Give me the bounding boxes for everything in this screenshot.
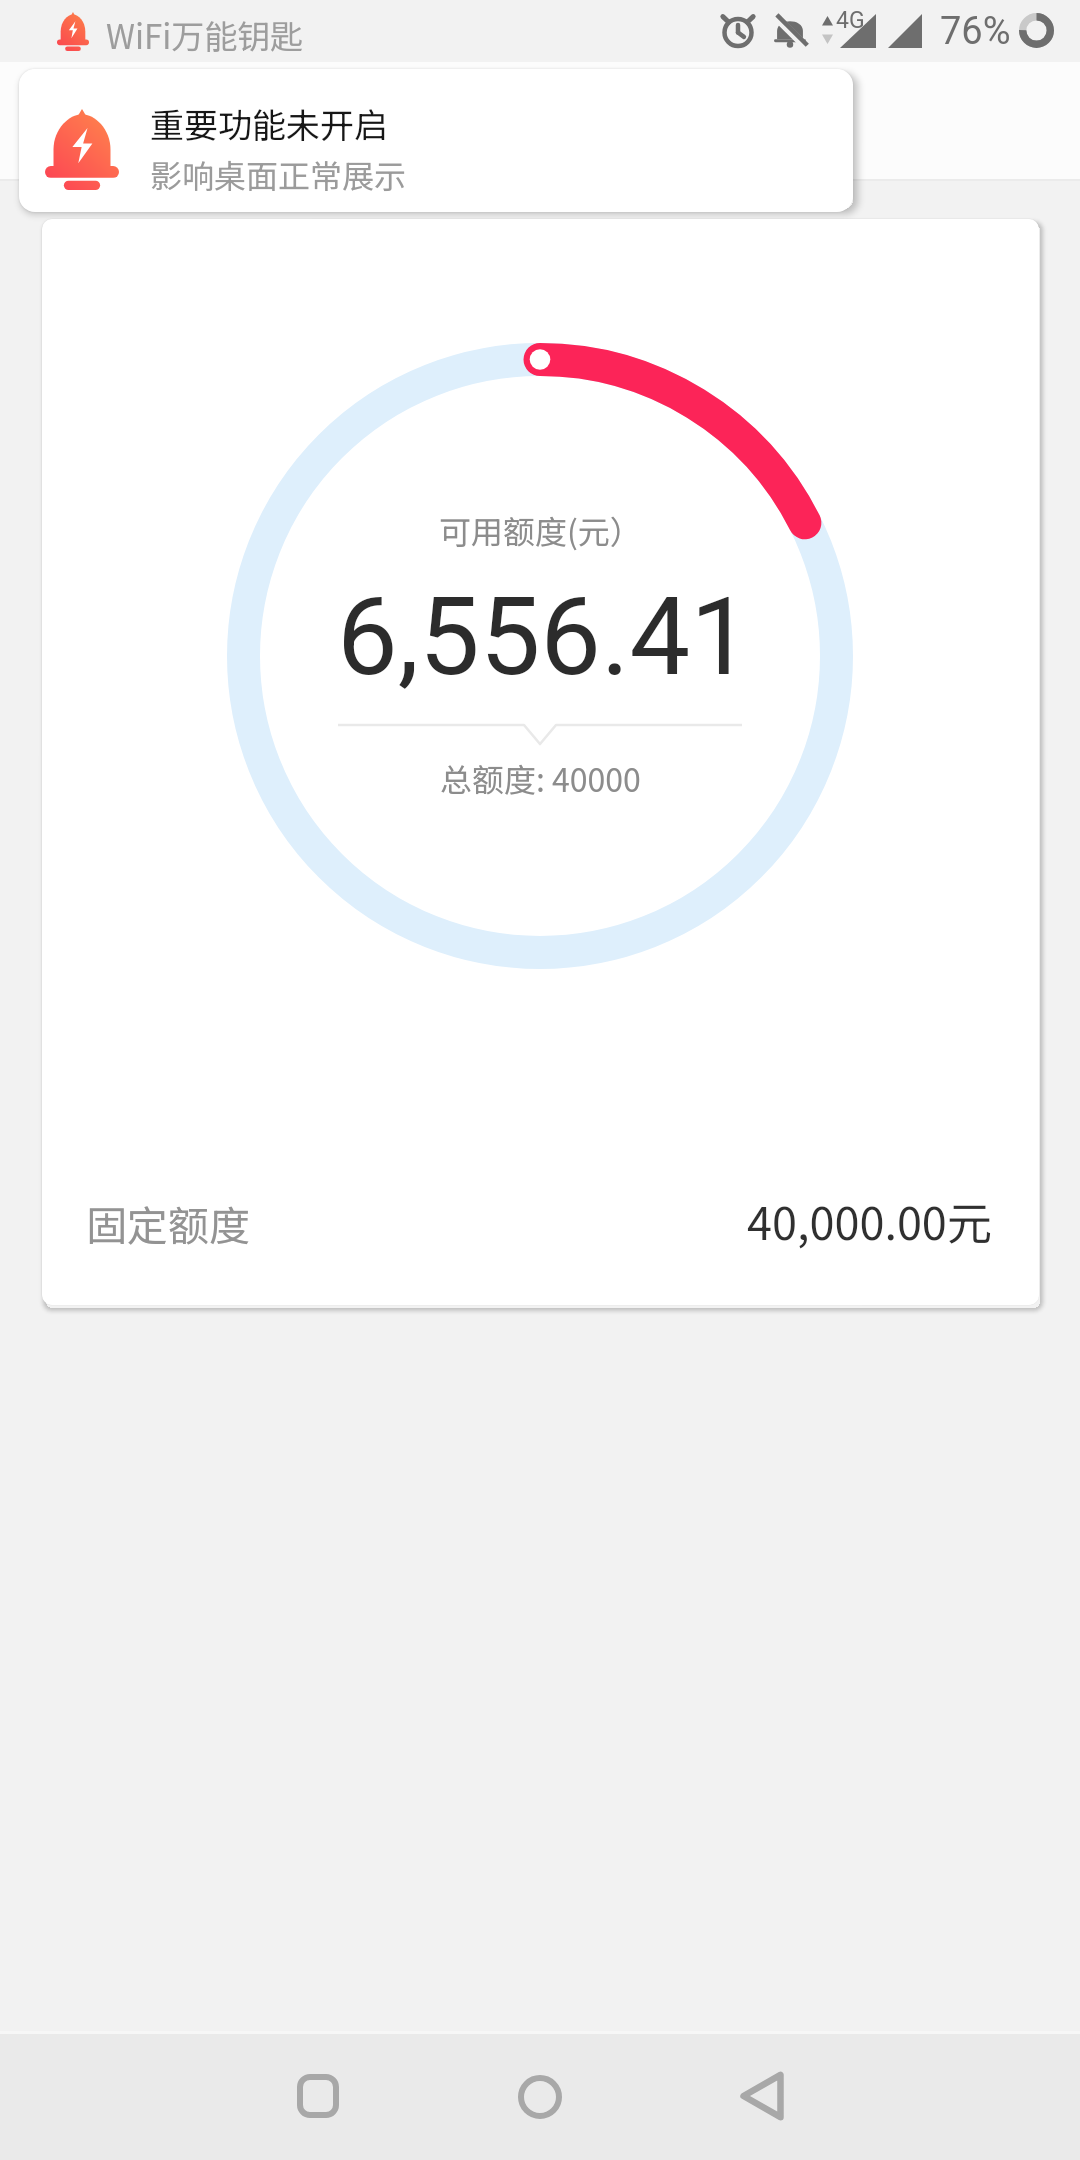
staticText: 可用额度(元）: [439, 507, 642, 553]
staticText: 6,556.41: [337, 574, 751, 701]
staticText: 固定额度: [86, 1193, 250, 1252]
button[interactable]: Back: [702, 2036, 822, 2156]
button[interactable]: Home: [480, 2037, 600, 2157]
staticText: 重要功能未开启: [150, 99, 388, 148]
button[interactable]: 重要功能未开启: [19, 69, 853, 212]
staticText: WiFi万能钥匙: [106, 11, 304, 59]
staticText: 总额度: 40000: [440, 755, 641, 801]
button[interactable]: 固定额度: [42, 1159, 1039, 1289]
staticText: 40,000.00元: [747, 1188, 992, 1253]
staticText: 4G: [836, 7, 865, 34]
staticText: 影响桌面正常展示: [150, 151, 407, 197]
button[interactable]: Recents: [258, 2036, 378, 2156]
staticText: 76%: [940, 9, 1011, 54]
